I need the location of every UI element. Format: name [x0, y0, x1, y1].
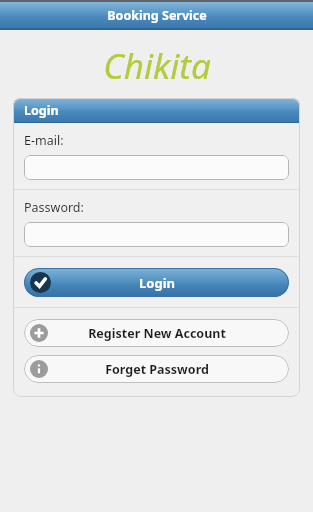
button[interactable]: Register New Account: [24, 319, 289, 347]
staticText: Password:: [24, 199, 84, 216]
staticText: Login: [139, 274, 175, 292]
staticText: Booking Service: [107, 7, 207, 24]
button[interactable]: E-mail:: [24, 155, 289, 180]
staticText: Chikita: [103, 42, 211, 90]
staticText: Forget Password: [105, 361, 209, 378]
button[interactable]: Forget Password: [24, 355, 289, 383]
button[interactable]: Password:: [24, 222, 289, 247]
staticText: Login: [24, 102, 59, 119]
staticText: E-mail:: [24, 132, 64, 149]
button[interactable]: Login: [24, 268, 289, 297]
staticText: Register New Account: [88, 325, 226, 342]
